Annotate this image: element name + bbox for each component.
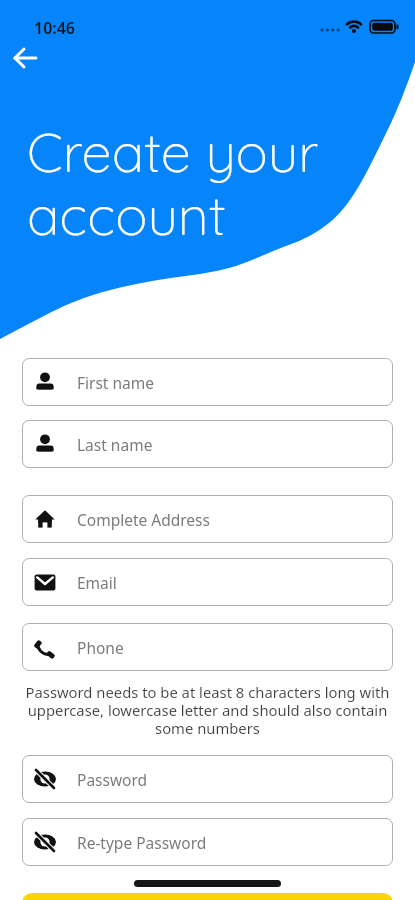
- button[interactable]: First name: [22, 358, 393, 406]
- button[interactable]: Password: [22, 755, 393, 803]
- staticText: 10:46: [34, 17, 76, 39]
- button[interactable]: Complete Address: [22, 495, 393, 543]
- button[interactable]: Phone: [22, 623, 393, 671]
- staticText: Last name: [77, 434, 153, 455]
- staticText: Re-type Password: [77, 832, 207, 853]
- staticText: Password needs to be at least 8 characte…: [12, 682, 403, 738]
- staticText: Email: [77, 572, 117, 593]
- button[interactable]: [22, 893, 393, 900]
- staticText: First name: [77, 372, 155, 393]
- staticText: Phone: [77, 637, 124, 658]
- staticText: Create your account: [27, 118, 319, 249]
- button[interactable]: Email: [22, 558, 393, 606]
- button[interactable]: [8, 40, 44, 76]
- button[interactable]: Re-type Password: [22, 818, 393, 866]
- staticText: Password: [77, 769, 148, 790]
- button[interactable]: Last name: [22, 420, 393, 468]
- staticText: Complete Address: [77, 509, 210, 530]
